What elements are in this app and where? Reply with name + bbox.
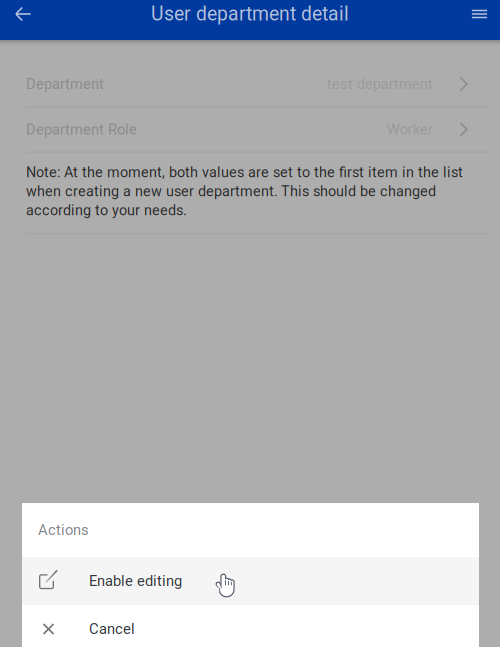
button[interactable]: Department [0,62,500,106]
button[interactable]: Menu [459,0,500,28]
staticText: Worker [387,121,433,138]
staticText: test department [327,75,433,93]
staticText: Enable editing [89,572,182,590]
button[interactable]: Cancel [22,605,479,647]
staticText: User department detail [151,3,349,25]
staticText: Cancel [89,620,135,638]
staticText: Department Role [26,121,137,138]
button[interactable]: Enable editing [22,557,479,605]
staticText: Department [26,75,104,93]
staticText: Note: At the moment, both values are set… [26,164,463,219]
staticText: Actions [38,521,89,539]
button[interactable]: Back [0,0,46,28]
button[interactable]: Department Role [0,107,500,151]
